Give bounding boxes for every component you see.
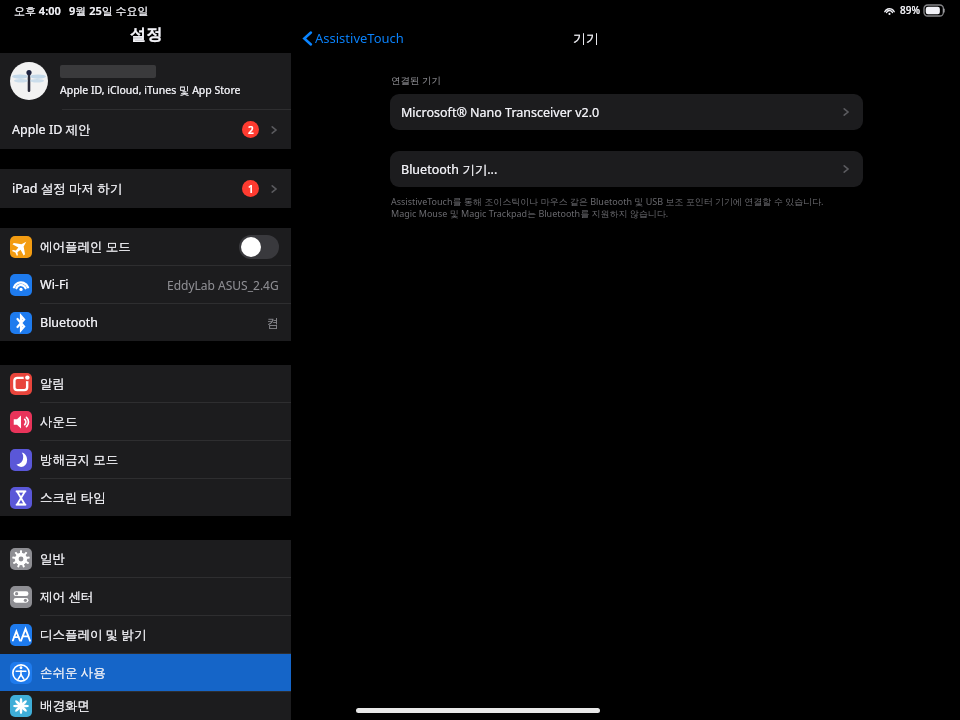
staticText: AssistiveTouch를 통해 조이스틱이나 마우스 같은 Bluetoo… (391, 195, 824, 207)
button[interactable]: 방해금지 모드 (0, 441, 291, 478)
staticText: 기기 (573, 30, 599, 46)
button[interactable]: Bluetooth 기기... (390, 151, 863, 187)
button[interactable]: 에어플레인 모드 토글 (239, 235, 279, 259)
button[interactable]: AssistiveTouch (299, 26, 408, 50)
button[interactable]: 배경화면 (0, 692, 291, 720)
staticText: 에어플레인 모드 (40, 238, 131, 255)
button[interactable]: Apple ID 제안 (0, 110, 291, 149)
staticText: EddyLab ASUS_2.4G (167, 277, 279, 293)
staticText: AssistiveTouch (315, 29, 404, 47)
button[interactable]: Wi-Fi (0, 266, 291, 303)
staticText: 89% (900, 3, 920, 17)
staticText: Bluetooth 기기... (401, 161, 498, 178)
staticText: 스크린 타임 (40, 489, 106, 506)
button[interactable]: 디스플레이 및 밝기 (0, 616, 291, 653)
button[interactable]: 에어플레인 모드 (0, 228, 291, 265)
staticText: Apple ID, iCloud, iTunes 및 App Store (60, 83, 241, 97)
staticText: 방해금지 모드 (40, 451, 119, 468)
staticText: Wi-Fi (40, 276, 69, 293)
staticText: 디스플레이 및 밝기 (40, 626, 147, 643)
staticText: Magic Mouse 및 Magic Trackpad는 Bluetooth를… (391, 207, 669, 219)
staticText: 사운드 (40, 414, 78, 430)
staticText: 알림 (40, 376, 65, 392)
button[interactable]: 사운드 (0, 403, 291, 440)
button[interactable]: Microsoft® Nano Transceiver v2.0 (390, 94, 863, 130)
button[interactable]: Apple ID, iCloud, iTunes 및 App Store (0, 53, 291, 109)
button[interactable]: iPad 설정 마저 하기 (0, 169, 291, 208)
staticText: Apple ID 제안 (12, 121, 91, 138)
staticText: 오후 4:00 (14, 3, 61, 18)
staticText: Bluetooth (40, 314, 99, 331)
staticText: Microsoft® Nano Transceiver v2.0 (401, 104, 600, 121)
staticText: 설정 (130, 25, 162, 45)
staticText: iPad 설정 마저 하기 (12, 180, 123, 197)
staticText: 일반 (40, 551, 65, 567)
staticText: 켬 (267, 315, 279, 330)
staticText: 1 (248, 182, 254, 196)
staticText: 배경화면 (40, 698, 90, 714)
staticText: 손쉬운 사용 (40, 664, 106, 681)
button[interactable]: Bluetooth (0, 304, 291, 341)
button[interactable]: 제어 센터 (0, 578, 291, 615)
staticText: 9월 25일 수요일 (69, 3, 149, 18)
button[interactable]: 일반 (0, 540, 291, 577)
staticText: 연결된 기기 (391, 74, 441, 87)
staticText: 2 (248, 123, 254, 137)
button[interactable]: 알림 (0, 365, 291, 402)
button[interactable]: 손쉬운 사용 (0, 654, 291, 691)
staticText: 제어 센터 (40, 588, 94, 605)
button[interactable]: 스크린 타임 (0, 479, 291, 516)
